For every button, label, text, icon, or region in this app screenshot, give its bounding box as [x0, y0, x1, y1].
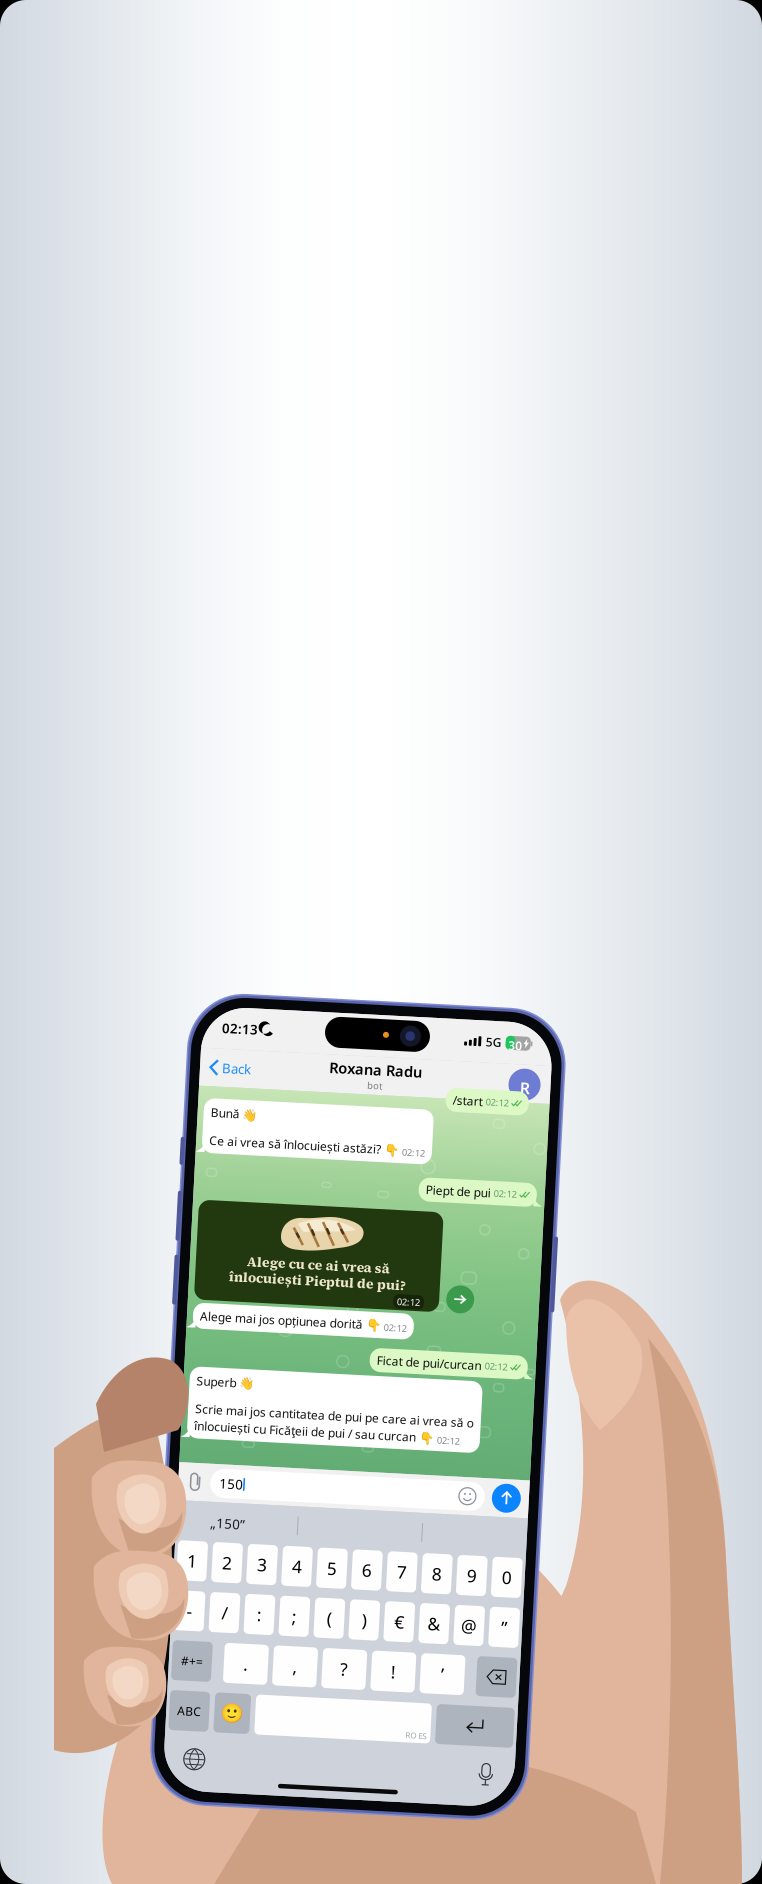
button[interactable]: 3 [277, 1540, 307, 1580]
staticText: / [254, 1598, 260, 1621]
staticText: : [289, 1598, 294, 1621]
staticText: & [460, 1598, 473, 1621]
staticText: 4 [322, 1548, 332, 1571]
button[interactable]: Send [518, 1466, 547, 1495]
staticText: Ce ai vrea să înlocuiești astăzi? 👇 [217, 1131, 407, 1147]
button[interactable]: Attach [212, 1470, 229, 1491]
staticText: Back [226, 1057, 255, 1075]
staticText: Alege cu ce ai vrea să [261, 1249, 404, 1267]
staticText: Alege mai jos opțiunea dorită 👇 [217, 1307, 398, 1323]
button[interactable]: ) [382, 1590, 412, 1630]
staticText: 8 [462, 1548, 472, 1571]
staticText: € [427, 1598, 437, 1621]
staticText: înlocuiești cu Ficăţeii de pui / sau cur… [217, 1416, 457, 1432]
button[interactable]: ! [407, 1640, 451, 1680]
button[interactable]: 0 [522, 1540, 552, 1580]
staticText: 2 [252, 1548, 262, 1571]
button[interactable]: ( [347, 1590, 377, 1630]
staticText: 02:12 [410, 1134, 433, 1147]
staticText: bot [372, 1069, 387, 1082]
staticText: ’ [476, 1648, 479, 1671]
button[interactable]: @ [487, 1590, 517, 1630]
button[interactable]: 1 [207, 1540, 237, 1580]
staticText: #+= [216, 1652, 238, 1668]
staticText: @ [494, 1598, 510, 1621]
button[interactable]: Forward [462, 1271, 490, 1299]
staticText: 5 [357, 1548, 367, 1571]
button[interactable]: 2 [242, 1540, 272, 1580]
staticText: 02:12 [491, 1080, 514, 1092]
button[interactable]: € [417, 1590, 447, 1630]
button[interactable]: Back [204, 1047, 264, 1085]
button[interactable]: - [207, 1590, 237, 1630]
button[interactable]: ” [522, 1590, 552, 1630]
staticText: /start [458, 1078, 488, 1094]
staticText: 1 [217, 1548, 227, 1571]
staticText: Bună 👋 [217, 1103, 264, 1119]
button[interactable]: , [308, 1640, 352, 1680]
staticText: 30 [511, 1020, 525, 1036]
staticText: Roxana Radu [333, 1050, 426, 1070]
staticText: ) [394, 1598, 399, 1621]
button[interactable]: Space [293, 1690, 469, 1730]
button[interactable]: . [259, 1640, 303, 1680]
staticText: Piept de pui [436, 1169, 501, 1185]
button[interactable]: Delete [512, 1640, 552, 1680]
staticText: ( [359, 1598, 364, 1621]
staticText: ABC [215, 1702, 239, 1718]
button[interactable]: & [452, 1590, 482, 1630]
staticText: 02:12 [401, 1310, 424, 1323]
staticText: Superb 👋 [217, 1372, 275, 1388]
button[interactable]: ? [357, 1640, 402, 1680]
staticText: ? [375, 1648, 383, 1671]
staticText: 02:12 [504, 1171, 527, 1183]
button[interactable]: 7 [417, 1540, 447, 1580]
button[interactable]: ABC [207, 1690, 247, 1730]
staticText: „150” [238, 1512, 273, 1530]
staticText: 5G [488, 1018, 504, 1034]
staticText: 02:13 [224, 1017, 260, 1035]
button[interactable]: 8 [452, 1540, 482, 1580]
button[interactable]: : [277, 1590, 307, 1630]
staticText: 0 [532, 1548, 542, 1571]
staticText: - [219, 1598, 225, 1621]
button[interactable]: Profile [513, 1051, 545, 1083]
button[interactable]: ’ [456, 1640, 500, 1680]
button[interactable]: Dictate [518, 1746, 535, 1769]
button[interactable]: Return [474, 1690, 552, 1730]
button[interactable]: Emoji [485, 1472, 502, 1489]
staticText: R [524, 1059, 534, 1081]
button[interactable]: / [242, 1590, 272, 1630]
staticText: 9 [497, 1548, 507, 1571]
staticText: 7 [427, 1548, 437, 1571]
button[interactable]: #+= [207, 1640, 247, 1680]
staticText: Ficat de pui/curcan [396, 1342, 501, 1358]
button[interactable]: ; [312, 1590, 342, 1630]
button[interactable]: Emoji keyboard [252, 1690, 288, 1730]
staticText: 02:12 [504, 1343, 527, 1356]
staticText: ! [426, 1648, 431, 1671]
staticText: Scrie mai jos cantitatea de pui pe care … [217, 1400, 496, 1415]
staticText: ” [534, 1598, 540, 1621]
button[interactable]: 5 [347, 1540, 377, 1580]
button[interactable]: 4 [312, 1540, 342, 1580]
staticText: înlocuiești Pieptul de pui? [244, 1265, 421, 1283]
staticText: ; [324, 1598, 329, 1621]
button[interactable]: 6 [382, 1540, 412, 1580]
staticText: 3 [287, 1548, 297, 1571]
staticText: 6 [392, 1548, 402, 1571]
staticText: 02:12 [460, 1420, 483, 1432]
button[interactable]: 9 [487, 1540, 517, 1580]
